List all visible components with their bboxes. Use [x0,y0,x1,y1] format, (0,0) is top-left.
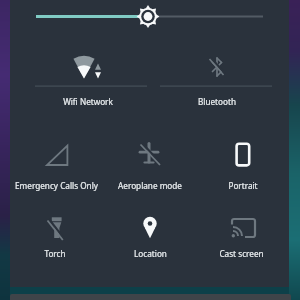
staticText: Bluetooth [198,96,236,107]
staticText: Torch [44,248,66,259]
staticText: Emergency Calls Only [15,180,98,191]
button[interactable] [10,200,103,274]
staticText: Wifi Network [63,96,113,107]
button[interactable] [157,44,275,114]
button[interactable] [103,124,196,198]
staticText: Portrait [228,180,258,191]
staticText: Aeroplane mode [118,180,182,191]
button[interactable] [30,0,270,34]
staticText: Cast screen [219,248,264,259]
button[interactable] [103,200,196,274]
button[interactable] [196,200,289,274]
staticText: Location [134,248,167,259]
button[interactable] [10,124,103,198]
button[interactable] [196,124,289,198]
button[interactable] [32,44,150,114]
